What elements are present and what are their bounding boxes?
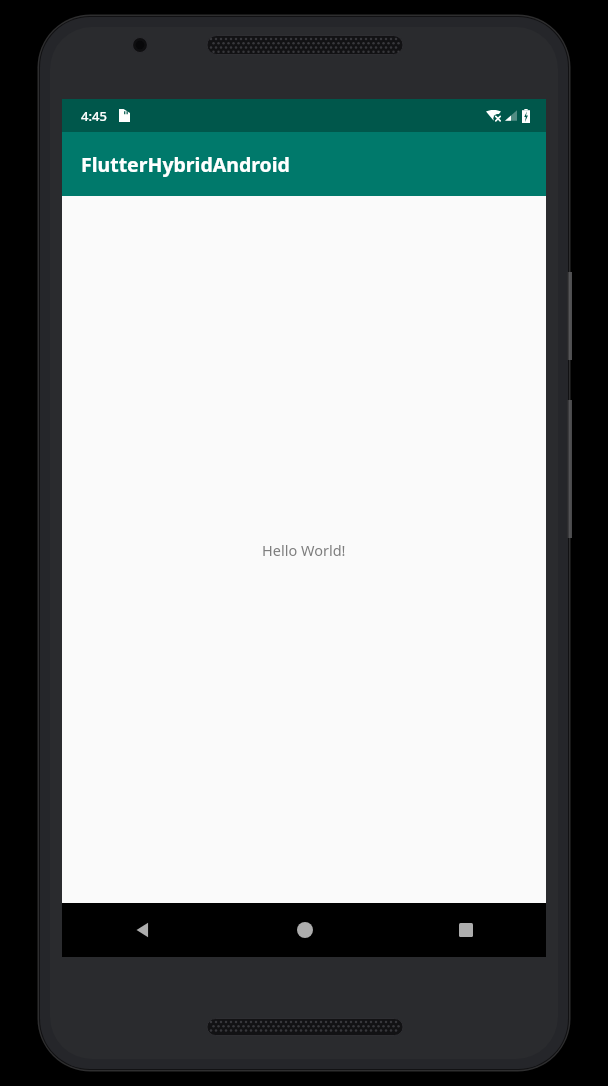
staticText: 4:45 <box>81 107 107 125</box>
staticText: FlutterHybridAndroid <box>81 151 290 178</box>
button[interactable]: Back <box>62 903 224 957</box>
staticText: Hello World! <box>262 540 346 560</box>
button[interactable]: Home <box>224 903 385 957</box>
button[interactable]: Recent apps <box>385 903 546 957</box>
